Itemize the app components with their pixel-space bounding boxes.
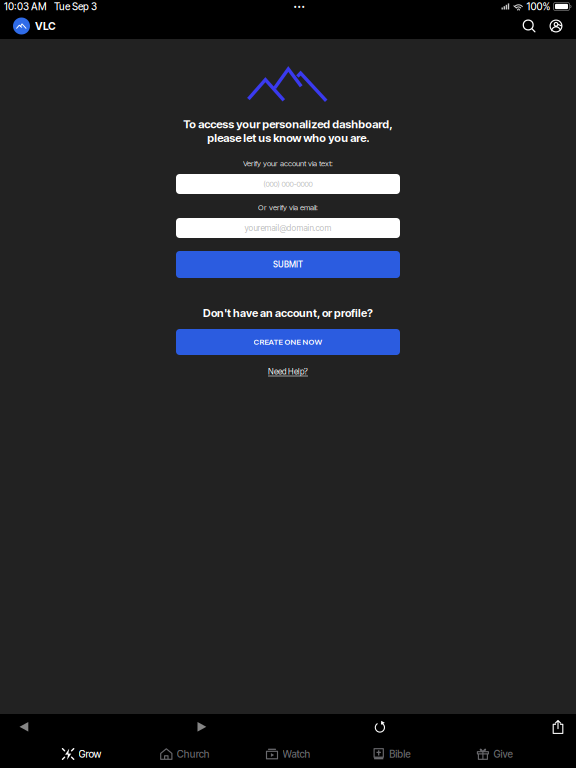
button[interactable]: Back [10,716,38,737]
staticText: (000) 000-0000 [263,179,312,188]
staticText: Don't have an account, or profile? [203,306,373,320]
staticText: Watch [282,748,310,760]
button[interactable]: VLC [0,13,69,39]
staticText: Bible [389,748,410,760]
staticText: youremail@domain.com [244,223,331,233]
staticText: Church [177,748,210,760]
staticText: Give [493,748,512,760]
button[interactable]: Need Help? [268,355,308,377]
button[interactable]: Church [133,740,236,768]
staticText: To access your personalized dashboard, p… [183,117,393,145]
button[interactable]: Share [544,716,572,737]
staticText: 10:03 AM [4,0,47,13]
staticText: SUBMIT [273,260,303,269]
staticText: Tue Sep 3 [54,0,97,13]
staticText: CREATE ONE NOW [253,337,322,347]
staticText: Verify your account via text: [243,159,333,168]
staticText: • • • [294,2,305,11]
staticText: Grow [79,748,102,760]
button[interactable]: Reload [366,716,394,737]
button[interactable]: Watch [236,740,340,768]
staticText: VLC [35,19,56,32]
button[interactable]: Grow [30,740,133,768]
staticText: Or verify via email: [258,203,318,212]
button[interactable]: Search [517,13,541,39]
button[interactable]: Give [443,740,546,768]
button[interactable]: Bible [340,740,443,768]
staticText: Need Help? [268,367,308,376]
staticText: 100% [526,0,550,13]
button[interactable]: Forward [188,716,216,737]
button[interactable]: CREATE ONE NOW [176,329,400,355]
button[interactable]: SUBMIT [176,251,400,278]
button[interactable]: Account [541,13,571,39]
